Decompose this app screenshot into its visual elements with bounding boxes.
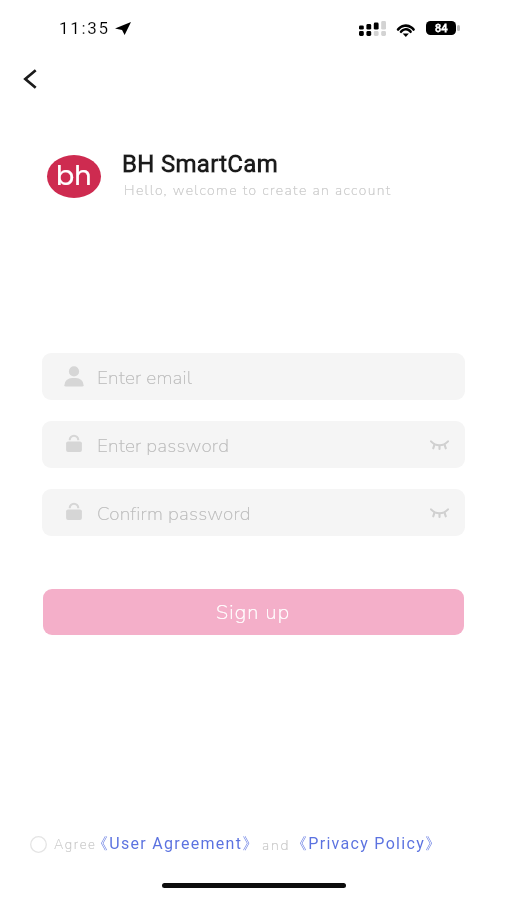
staticText: Hello, welcome to create an account	[124, 181, 392, 200]
staticText: Enter email	[97, 365, 193, 391]
button[interactable]: 《User Agreement》	[92, 834, 260, 854]
button[interactable]: Show password	[425, 498, 454, 527]
staticText: and	[262, 836, 291, 855]
staticText: Enter password	[97, 433, 230, 459]
button[interactable]: 《Privacy Policy》	[291, 834, 443, 854]
staticText: Confirm password	[97, 501, 251, 527]
button[interactable]: Sign up	[43, 589, 464, 635]
staticText: Sign up	[216, 599, 291, 626]
button[interactable]: Enter password	[42, 421, 465, 468]
button[interactable]: Back	[8, 57, 52, 101]
button[interactable]: Confirm password	[42, 489, 465, 536]
staticText: 11:35	[59, 18, 110, 38]
staticText: Agree	[54, 836, 97, 854]
button[interactable]: Enter email	[42, 353, 465, 400]
staticText: bh	[56, 157, 92, 195]
staticText: BH SmartCam	[122, 150, 278, 178]
button[interactable]: Agree to terms	[24, 830, 52, 858]
button[interactable]: Show password	[425, 430, 454, 459]
staticText: 84	[435, 22, 448, 35]
